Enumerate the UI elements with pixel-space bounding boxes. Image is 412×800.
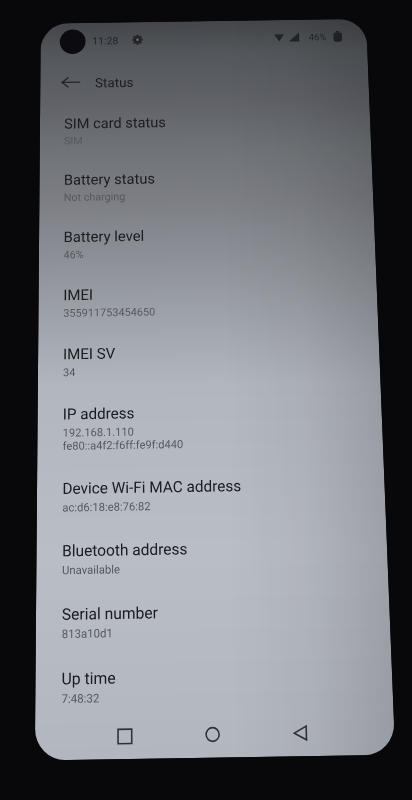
staticText: IMEI SV <box>63 345 116 363</box>
staticText: Not charging <box>64 191 125 204</box>
staticText: 46% <box>63 248 84 261</box>
staticText: IMEI <box>63 286 93 304</box>
staticText: Serial number <box>62 603 158 624</box>
staticText: 7:48:32 <box>61 691 100 706</box>
staticText: SIM <box>64 135 83 147</box>
button[interactable]: Recent apps <box>105 716 143 756</box>
staticText: 11:28 <box>92 35 119 47</box>
button[interactable]: Navigate up <box>53 66 87 99</box>
button[interactable]: IMEI <box>38 269 378 333</box>
button[interactable]: Home <box>193 714 232 755</box>
staticText: Unavailable <box>62 563 121 577</box>
staticText: fe80::a4f2:f6ff:fe9f:d440 <box>63 438 184 453</box>
staticText: Up time <box>61 668 116 689</box>
staticText: Bluetooth address <box>62 540 188 561</box>
staticText: 355911753454650 <box>63 306 155 320</box>
staticText: 34 <box>63 366 76 379</box>
staticText: 813a10d1 <box>62 626 114 641</box>
button[interactable]: Device Wi-Fi MAC address <box>37 461 386 528</box>
staticText: Device Wi-Fi MAC address <box>62 477 241 498</box>
button[interactable]: Battery level <box>39 211 376 274</box>
staticText: IP address <box>63 404 135 423</box>
button[interactable]: Back <box>280 713 319 753</box>
button[interactable]: Serial number <box>36 586 391 656</box>
staticText: ac:d6:18:e8:76:82 <box>62 500 151 515</box>
staticText: SIM card status <box>64 114 167 132</box>
button[interactable]: IMEI SV <box>38 328 381 393</box>
button[interactable]: Battery status <box>39 155 374 217</box>
staticText: Battery level <box>64 227 145 246</box>
staticText: Status <box>95 75 134 90</box>
button[interactable]: Bluetooth address <box>36 523 389 592</box>
button[interactable]: SIM card status <box>40 99 371 160</box>
button[interactable]: Up time <box>35 650 394 721</box>
staticText: Battery status <box>64 170 155 189</box>
staticText: 192.168.1.110 <box>63 425 134 440</box>
staticText: 46% <box>308 32 327 43</box>
button[interactable]: IP address <box>37 387 384 467</box>
